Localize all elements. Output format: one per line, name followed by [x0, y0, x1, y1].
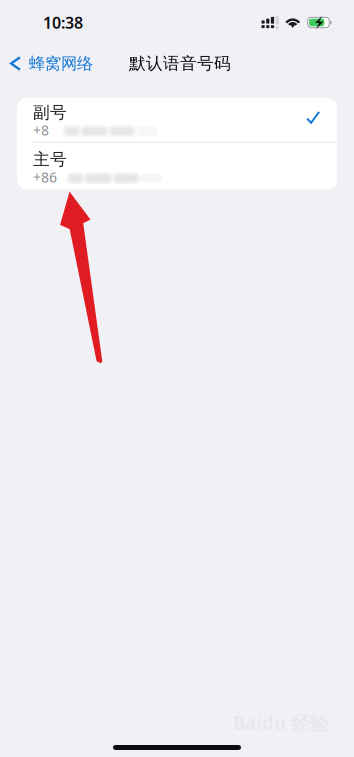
- button[interactable]: 副号: [17, 98, 337, 142]
- button[interactable]: 蜂窝网络: [0, 46, 101, 81]
- staticText: 蜂窝网络: [29, 53, 93, 74]
- staticText: 10:38: [43, 12, 83, 33]
- staticText: Baidu 经验: [233, 710, 329, 735]
- staticText: 默认语音号码: [129, 53, 231, 74]
- staticText: +86: [33, 168, 57, 187]
- staticText: 副号: [33, 102, 67, 123]
- button[interactable]: 主号: [17, 142, 337, 190]
- staticText: jingyan.baidu.com: [236, 735, 325, 750]
- staticText: +8: [33, 121, 49, 140]
- staticText: 主号: [33, 149, 67, 170]
